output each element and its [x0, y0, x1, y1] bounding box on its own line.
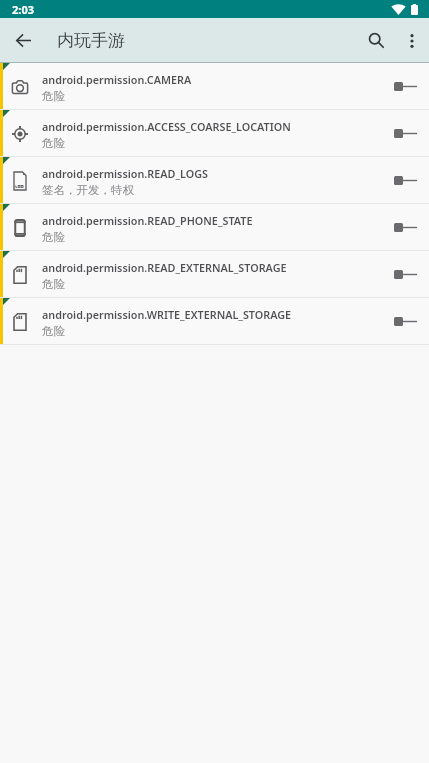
staticText: 危险 — [42, 230, 65, 244]
staticText: android.permission.WRITE_EXTERNAL_STORAG… — [42, 307, 292, 322]
staticText: android.permission.READ_LOGS — [42, 166, 208, 181]
button[interactable]: Back — [0, 18, 47, 63]
staticText: 危险 — [42, 324, 65, 338]
button[interactable]: android.permission.READ_PHONE_STATE — [0, 204, 429, 251]
staticText: android.permission.CAMERA — [42, 72, 192, 87]
staticText: android.permission.ACCESS_COARSE_LOCATIO… — [42, 119, 291, 134]
staticText: android.permission.READ_EXTERNAL_STORAGE — [42, 260, 287, 275]
staticText: 内玩手游 — [57, 30, 125, 51]
button[interactable]: android.permission.READ_EXTERNAL_STORAGE — [0, 251, 429, 298]
button[interactable]: More options — [394, 23, 429, 58]
button[interactable]: Search — [359, 23, 394, 58]
staticText: 危险 — [42, 136, 65, 150]
button[interactable]: android.permission.READ_LOGS — [0, 157, 429, 204]
button[interactable]: android.permission.CAMERA — [0, 63, 429, 110]
staticText: 危险 — [42, 89, 65, 103]
staticText: 签名，开发，特权 — [42, 183, 134, 197]
staticText: 危险 — [42, 277, 65, 291]
staticText: android.permission.READ_PHONE_STATE — [42, 213, 253, 228]
staticText: 2:03 — [12, 2, 34, 17]
button[interactable]: android.permission.WRITE_EXTERNAL_STORAG… — [0, 298, 429, 345]
button[interactable]: android.permission.ACCESS_COARSE_LOCATIO… — [0, 110, 429, 157]
